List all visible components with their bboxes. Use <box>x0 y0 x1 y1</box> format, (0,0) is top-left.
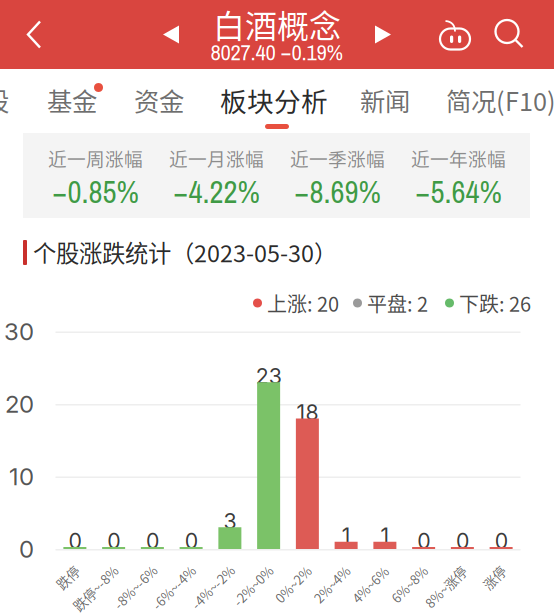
staticText: 跌停~-8% <box>67 579 124 598</box>
staticText: 0 <box>417 528 430 554</box>
staticText: 4%~6% <box>348 575 393 594</box>
staticText: 0 <box>495 528 508 554</box>
staticText: 1 <box>380 523 389 549</box>
staticText: 30 <box>4 317 34 346</box>
staticText: 港股 <box>0 82 9 118</box>
button[interactable]: Search <box>485 0 535 69</box>
staticText: 个股涨跌统计（2023-05-30） <box>33 235 337 269</box>
staticText: 0 <box>107 528 120 554</box>
staticText: 10 <box>9 462 34 491</box>
staticText: 23 <box>256 363 282 389</box>
staticText: 0 <box>185 528 198 554</box>
staticText: -6%~-4% <box>146 578 201 597</box>
staticText: -2%~0% <box>228 576 278 595</box>
staticText: 近一月涨幅 <box>169 144 264 171</box>
staticText: -8%~-6% <box>108 578 163 596</box>
staticText: 2%~4% <box>309 575 354 594</box>
staticText: 1 <box>342 523 351 549</box>
staticText: −8.69% <box>294 171 380 213</box>
staticText: 20 <box>5 389 34 418</box>
staticText: 新闻 <box>360 82 410 118</box>
staticText: 上涨: 20 <box>267 288 339 317</box>
button[interactable]: Back <box>6 0 62 69</box>
button[interactable]: 基金 <box>36 69 108 132</box>
staticText: 平盘: 2 <box>367 288 428 317</box>
staticText: 0 <box>19 534 34 563</box>
staticText: 3 <box>223 508 236 534</box>
staticText: 6%~8% <box>387 575 432 594</box>
button[interactable]: 板块分析 <box>212 69 336 132</box>
staticText: 白酒概念 <box>213 1 341 47</box>
staticText: 板块分析 <box>220 81 328 119</box>
button[interactable]: Next sector <box>360 0 406 69</box>
staticText: 资金 <box>134 82 184 118</box>
staticText: 简况(F10) <box>446 82 554 118</box>
button[interactable]: AI assistant <box>432 0 478 69</box>
staticText: 基金 <box>47 82 97 118</box>
button[interactable]: 新闻 <box>349 69 421 132</box>
staticText: 近一季涨幅 <box>290 144 385 171</box>
staticText: 8027.40 −0.19% <box>210 37 343 67</box>
staticText: −0.85% <box>52 171 138 213</box>
button[interactable]: Previous sector <box>148 0 194 69</box>
staticText: 0 <box>146 528 159 554</box>
staticText: 下跌: 26 <box>459 288 531 317</box>
staticText: 近一年涨幅 <box>411 144 506 171</box>
staticText: 跌停 <box>55 568 81 587</box>
staticText: 18 <box>296 400 318 425</box>
staticText: 0 <box>68 528 81 554</box>
staticText: −4.22% <box>173 171 259 213</box>
button[interactable]: 简况(F10) <box>431 69 554 132</box>
staticText: 8%~涨停 <box>420 577 472 596</box>
staticText: 0 <box>456 528 469 554</box>
staticText: -4%~-2% <box>185 578 240 596</box>
staticText: 近一周涨幅 <box>48 144 143 171</box>
button[interactable]: 资金 <box>123 69 195 132</box>
staticText: 涨停 <box>481 568 507 587</box>
button[interactable]: 港股 <box>0 69 19 132</box>
staticText: 0%~2% <box>271 575 316 594</box>
staticText: −5.64% <box>415 171 501 213</box>
